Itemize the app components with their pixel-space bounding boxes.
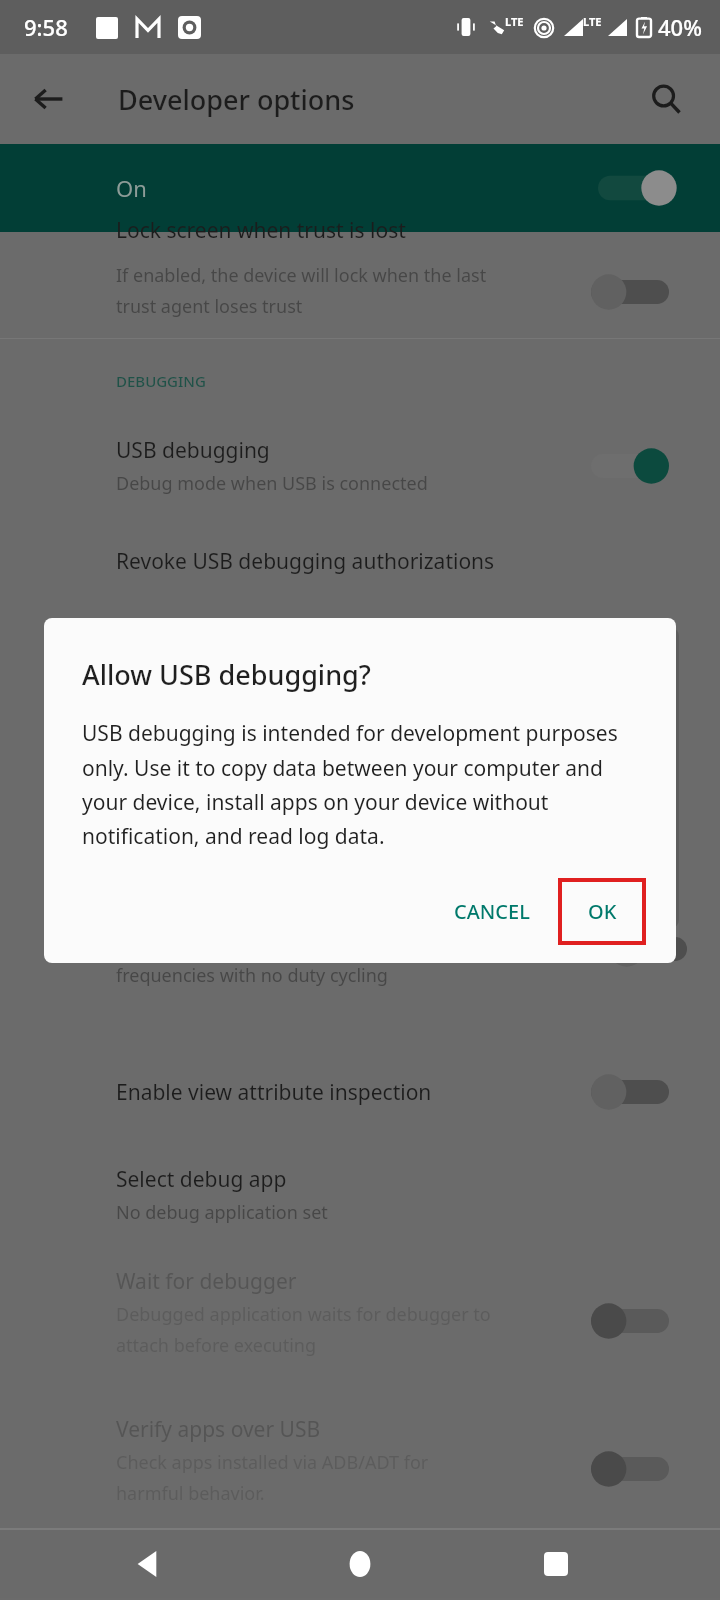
staticText: If enabled, the device will lock when th… bbox=[116, 263, 586, 318]
staticText: DEBUGGING bbox=[116, 371, 206, 391]
staticText: On bbox=[116, 173, 147, 203]
button[interactable]: Home bbox=[330, 1534, 390, 1594]
button[interactable]: Off bbox=[584, 1068, 676, 1116]
button[interactable]: Lock screen when trust is lost bbox=[0, 232, 720, 338]
button[interactable]: OK bbox=[560, 880, 644, 943]
staticText: LTE bbox=[505, 14, 524, 29]
staticText: Select debug app bbox=[116, 1165, 287, 1194]
staticText: Enable view attribute inspection bbox=[116, 1078, 432, 1107]
staticText: Revoke USB debugging authorizations bbox=[116, 547, 495, 576]
staticText: Allow USB debugging? bbox=[82, 656, 371, 693]
staticText: 40% bbox=[658, 12, 702, 42]
staticText: Debug mode when USB is connected bbox=[116, 471, 428, 496]
button[interactable]: Revoke USB debugging authorizations bbox=[0, 523, 720, 599]
button[interactable]: Recent apps bbox=[526, 1534, 586, 1594]
button[interactable]: Enable view attribute inspection bbox=[0, 1053, 720, 1131]
staticText: Lock screen when trust is lost bbox=[116, 216, 406, 245]
staticText: LTE bbox=[583, 14, 602, 29]
button[interactable]: On bbox=[584, 442, 676, 490]
button[interactable]: CANCEL bbox=[438, 884, 546, 939]
staticText: CANCEL bbox=[454, 898, 530, 925]
staticText: No debug application set bbox=[116, 1200, 328, 1225]
button[interactable]: Force full GNSS measurements bbox=[0, 899, 720, 1035]
button[interactable]: Off bbox=[584, 1445, 676, 1493]
button[interactable]: Select debug app bbox=[0, 1149, 720, 1241]
staticText: USB debugging is intended for developmen… bbox=[82, 719, 646, 850]
staticText: Developer options bbox=[118, 81, 355, 118]
button[interactable]: Off bbox=[584, 268, 676, 316]
button[interactable]: USB debugging bbox=[0, 421, 720, 511]
staticText: Track all GNSS constellations and freque… bbox=[116, 932, 395, 987]
staticText: Wait for debugger bbox=[116, 1267, 297, 1296]
staticText: Check apps installed via ADB/ADT for har… bbox=[116, 1450, 429, 1505]
button[interactable]: Off bbox=[584, 1297, 676, 1345]
button[interactable]: Search bbox=[638, 71, 694, 127]
staticText: OK bbox=[588, 898, 617, 925]
button[interactable]: Back bbox=[118, 1534, 178, 1594]
staticText: Verify apps over USB bbox=[116, 1415, 321, 1444]
staticText: Debugged application waits for debugger … bbox=[116, 1302, 491, 1357]
staticText: 9:58 bbox=[24, 12, 68, 42]
button[interactable]: On bbox=[0, 144, 720, 232]
button[interactable]: Navigate up bbox=[20, 71, 76, 127]
button[interactable]: Off bbox=[602, 925, 694, 973]
staticText: USB debugging bbox=[116, 436, 270, 465]
